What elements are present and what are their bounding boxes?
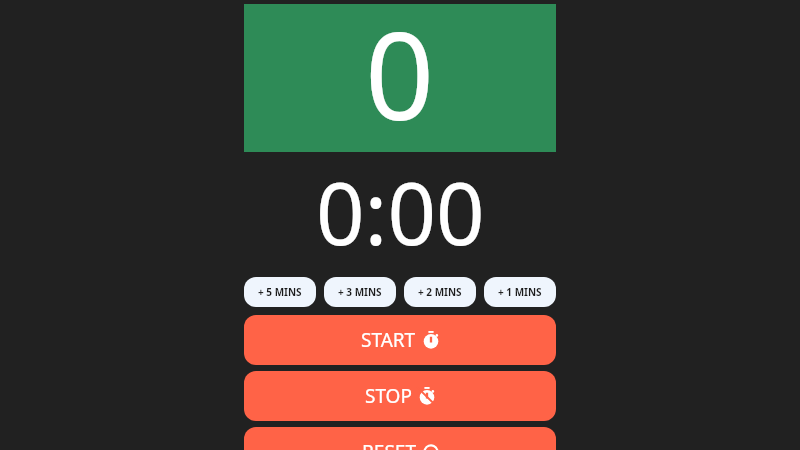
staticText: + 5 MINS xyxy=(258,285,302,299)
staticText: STOP xyxy=(365,383,412,409)
button[interactable]: + 3 MINS xyxy=(324,277,396,307)
other: Reset timer xyxy=(423,443,439,450)
staticText: 0:00 xyxy=(316,154,485,260)
other: Stop timer xyxy=(419,387,435,405)
button[interactable]: RESET xyxy=(244,427,556,450)
other: Start timer xyxy=(423,331,439,349)
button[interactable]: START xyxy=(244,315,556,365)
button[interactable]: + 5 MINS xyxy=(244,277,316,307)
staticText: + 1 MINS xyxy=(498,285,542,299)
button[interactable]: + 2 MINS xyxy=(404,277,476,307)
button[interactable]: + 1 MINS xyxy=(484,277,556,307)
staticText: + 3 MINS xyxy=(338,285,382,299)
staticText: START xyxy=(361,327,416,353)
staticText: + 2 MINS xyxy=(418,285,462,299)
button[interactable]: STOP xyxy=(244,371,556,421)
staticText: 0 xyxy=(365,0,435,139)
staticText: RESET xyxy=(362,439,416,450)
